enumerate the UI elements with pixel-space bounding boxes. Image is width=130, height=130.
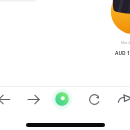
button[interactable]: Forward xyxy=(19,85,47,113)
staticText: Mar 4, 15:10 UTC xyxy=(121,40,130,45)
button[interactable]: Back xyxy=(0,85,18,113)
staticText: AUD 1.52 xyxy=(115,50,130,57)
button[interactable]: Refresh xyxy=(80,85,108,113)
other: Emoji xyxy=(0,0,130,130)
button[interactable]: Home xyxy=(48,85,76,113)
button[interactable]: Share xyxy=(112,85,130,113)
